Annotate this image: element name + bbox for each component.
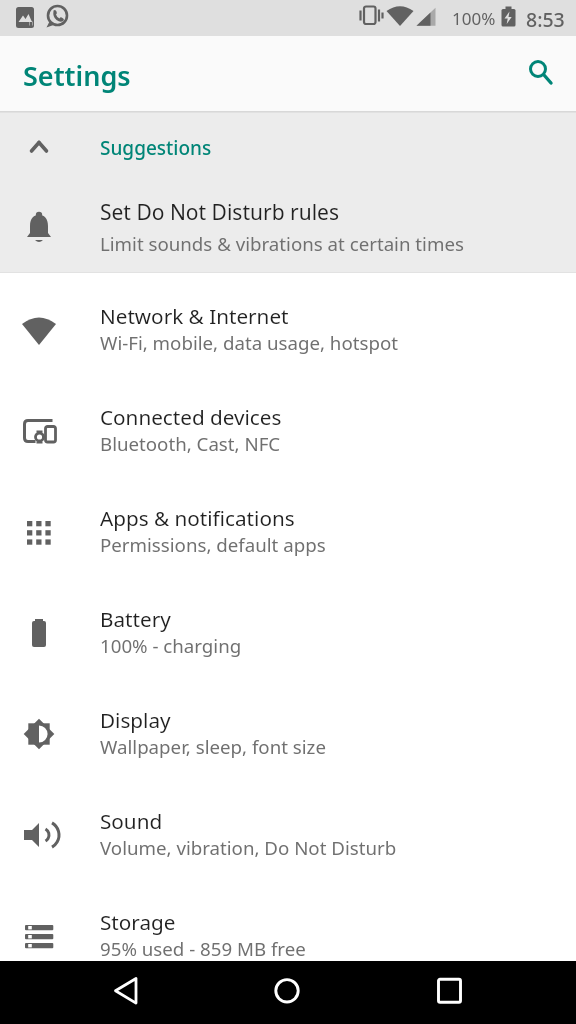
staticText: Limit sounds & vibrations at certain tim…: [100, 231, 464, 256]
staticText: 95% used - 859 MB free: [100, 936, 306, 961]
button[interactable]: Connected devices: [0, 374, 576, 475]
button[interactable]: Battery: [0, 576, 576, 677]
button[interactable]: Apps & notifications: [0, 475, 576, 576]
staticText: Wi-Fi, mobile, data usage, hotspot: [100, 330, 398, 355]
staticText: Display: [100, 706, 171, 734]
staticText: Apps & notifications: [100, 504, 295, 532]
staticText: Storage: [100, 908, 176, 936]
button[interactable]: Storage: [0, 879, 576, 980]
staticText: 8:53: [526, 6, 565, 33]
button[interactable]: [515, 46, 563, 94]
staticText: Wallpaper, sleep, font size: [100, 734, 326, 759]
staticText: Battery: [100, 605, 171, 633]
staticText: Network & Internet: [100, 302, 289, 330]
button[interactable]: [384, 961, 576, 1024]
staticText: 100%: [452, 7, 496, 30]
button[interactable]: Suggestions: [0, 111, 576, 273]
staticText: Sound: [100, 807, 163, 835]
button[interactable]: Display: [0, 677, 576, 778]
staticText: 100% - charging: [100, 633, 242, 658]
staticText: Volume, vibration, Do Not Disturb: [100, 835, 397, 860]
button[interactable]: [0, 961, 192, 1024]
staticText: Bluetooth, Cast, NFC: [100, 431, 281, 456]
staticText: Set Do Not Disturb rules: [100, 198, 339, 227]
button[interactable]: [192, 961, 384, 1024]
staticText: Connected devices: [100, 403, 282, 431]
staticText: Settings: [23, 57, 131, 94]
staticText: Permissions, default apps: [100, 532, 326, 557]
staticText: Suggestions: [100, 135, 212, 161]
button[interactable]: Network & Internet: [0, 273, 576, 374]
button[interactable]: Sound: [0, 778, 576, 879]
